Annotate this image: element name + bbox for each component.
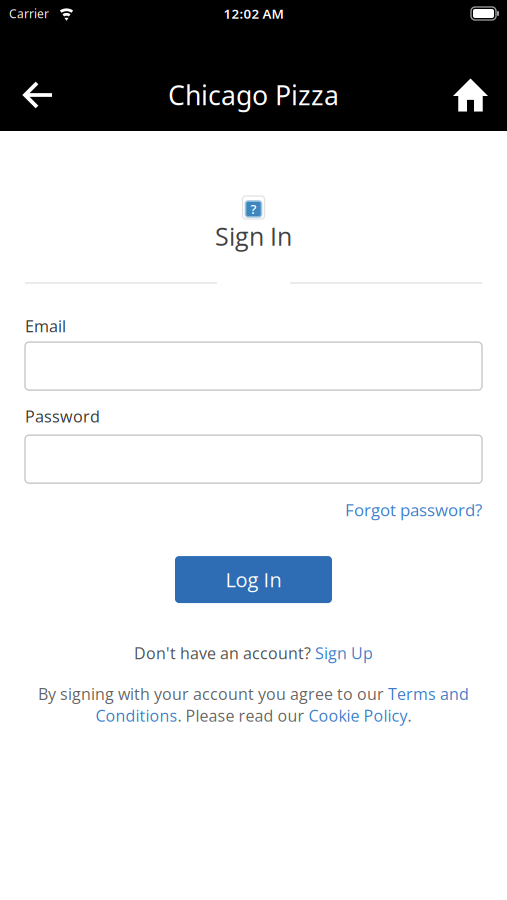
- button[interactable]: Sign Up: [315, 642, 373, 664]
- button[interactable]: Terms and: [388, 683, 469, 705]
- staticText: . Please read our: [177, 705, 308, 726]
- staticText: Sign Up: [315, 642, 373, 664]
- button[interactable]: Conditions: [95, 705, 177, 726]
- staticText: Cookie Policy: [308, 705, 407, 726]
- staticText: Chicago Pizza: [168, 77, 339, 113]
- button[interactable]: Cookie Policy: [308, 705, 407, 726]
- button[interactable]: Log In: [175, 556, 332, 603]
- staticText: Email: [25, 315, 66, 337]
- staticText: Forgot password?: [345, 498, 482, 521]
- button[interactable]: Back: [23, 80, 54, 110]
- staticText: Conditions: [95, 705, 177, 726]
- staticText: ?: [250, 200, 256, 218]
- staticText: Password: [25, 405, 100, 427]
- button[interactable]: Forgot password?: [345, 498, 482, 521]
- staticText: .: [407, 705, 411, 726]
- staticText: Don't have an account?: [134, 642, 315, 664]
- button[interactable]: Home: [453, 78, 488, 111]
- staticText: Sign In: [215, 219, 292, 253]
- staticText: By signing with your account you agree t…: [38, 683, 388, 705]
- staticText: Terms and: [388, 683, 469, 705]
- staticText: 12:02 AM: [223, 5, 283, 22]
- staticText: Carrier: [9, 5, 49, 21]
- staticText: Log In: [225, 566, 281, 593]
